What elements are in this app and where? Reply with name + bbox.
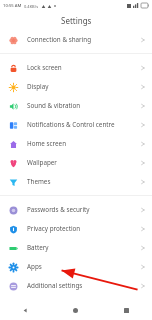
button[interactable]: Apps [0,257,152,276]
button[interactable]: Lock screen [0,58,152,77]
staticText: Lock screen [27,63,141,72]
button[interactable]: Home screen [0,134,152,153]
staticText: Display [27,82,141,91]
button[interactable]: Passwords & security [0,200,152,219]
staticText: Battery [27,243,141,252]
button[interactable]: Additional settings [0,276,152,295]
staticText: Sound & vibration [27,101,141,110]
staticText: Wallpaper [27,158,141,167]
staticText: Themes [27,177,141,186]
button[interactable]: Notifications & Control centre [0,115,152,134]
button[interactable]: Themes [0,172,152,191]
staticText: Home screen [27,139,141,148]
button[interactable]: Home [50,300,101,320]
staticText: 10:55 AM [3,3,22,9]
button[interactable]: Recents [101,300,152,320]
button[interactable]: Connection & sharing [0,30,152,49]
button[interactable]: Display [0,77,152,96]
button[interactable]: Wallpaper [0,153,152,172]
button[interactable]: Privacy protection [0,219,152,238]
button[interactable]: Sound & vibration [0,96,152,115]
staticText: Privacy protection [27,224,141,233]
staticText: Apps [27,262,141,271]
staticText: Notifications & Control centre [27,120,141,129]
button[interactable]: Battery [0,238,152,257]
staticText: Additional settings [27,281,141,290]
staticText: Settings [61,15,92,26]
staticText: Passwords & security [27,205,141,214]
button[interactable]: Back [0,300,50,320]
staticText: Connection & sharing [27,35,141,44]
staticText: 0.4KB/s [24,4,39,9]
